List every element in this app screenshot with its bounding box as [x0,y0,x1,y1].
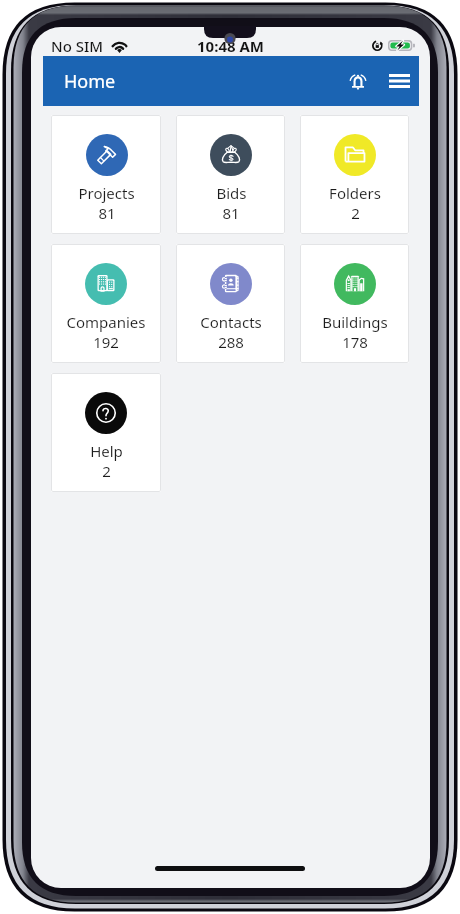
button[interactable]: Contacts [176,244,285,363]
button[interactable]: Buildings [300,244,409,363]
button[interactable]: Bids [176,115,285,234]
staticText: No SIM [51,36,104,56]
staticText: 10:48 AM [197,36,264,56]
button[interactable]: Folders [300,115,409,234]
button[interactable]: Menu [379,56,419,106]
staticText: Folders [329,183,381,203]
staticText: 192 [93,332,119,352]
button[interactable]: Projects [51,115,161,234]
staticText: Companies [66,312,146,332]
staticText: Buildings [322,312,388,332]
staticText: Projects [78,183,135,203]
staticText: 81 [98,203,116,223]
button[interactable]: Companies [51,244,161,363]
staticText: 2 [351,203,360,223]
staticText: 81 [222,203,240,223]
button[interactable]: Notifications [336,56,379,106]
staticText: Home [64,69,116,94]
staticText: 178 [342,332,368,352]
staticText: 288 [218,332,244,352]
staticText: Contacts [200,312,262,332]
button[interactable]: Help [51,373,161,492]
staticText: Help [90,441,123,461]
staticText: 2 [102,461,111,481]
staticText: Bids [216,183,247,203]
